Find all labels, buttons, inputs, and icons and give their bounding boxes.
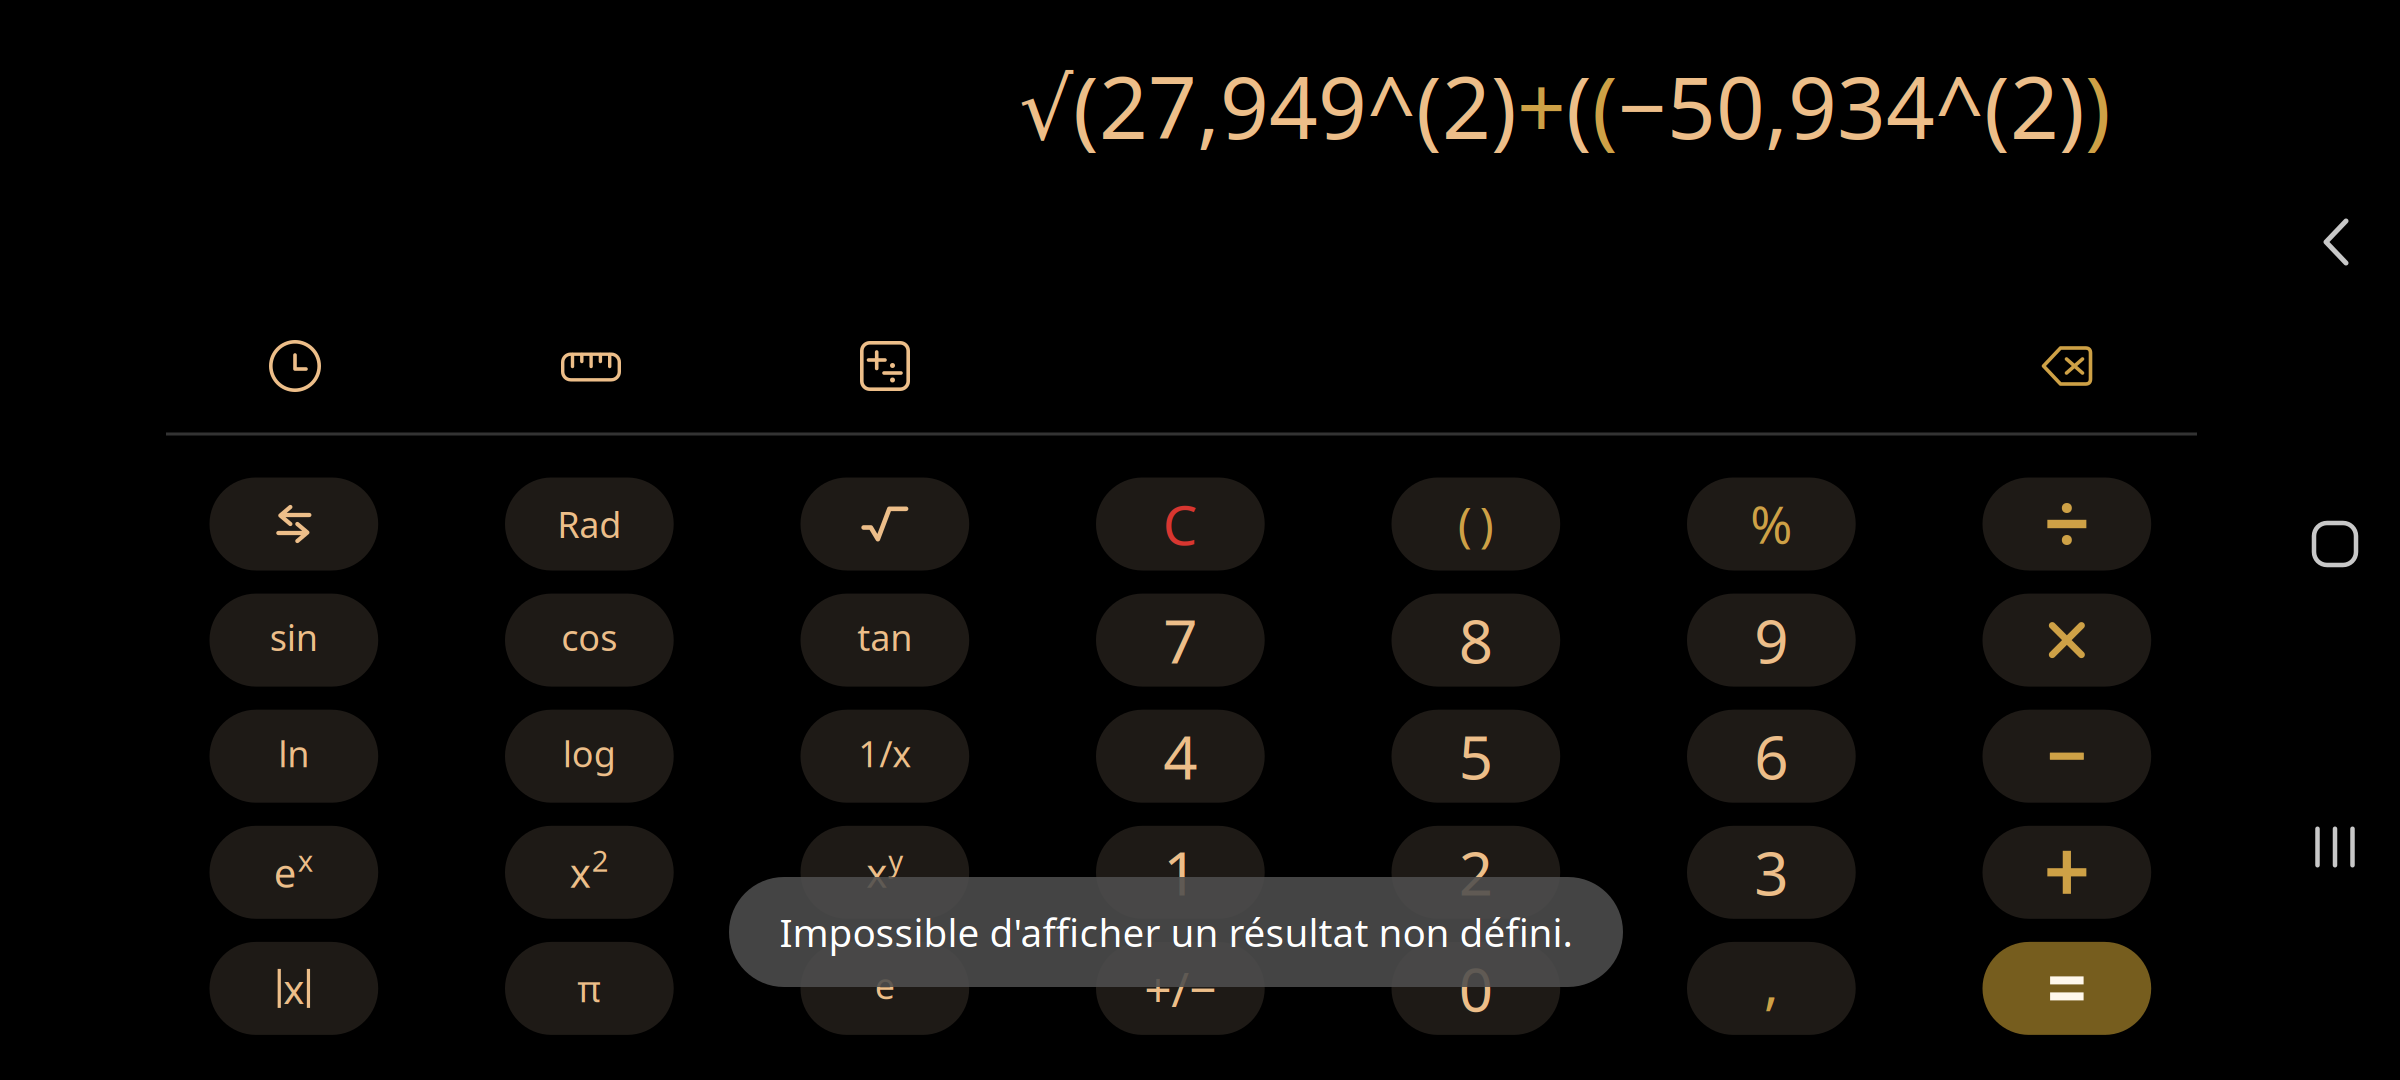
button[interactable]: 8: [1391, 594, 1560, 687]
staticText: 0: [1459, 949, 1493, 1028]
staticText: ,: [1764, 945, 1779, 1020]
button[interactable]: Clear: [1096, 477, 1265, 570]
staticText: C: [1163, 488, 1198, 560]
button[interactable]: e: [800, 942, 969, 1035]
button[interactable]: 6: [1687, 710, 1856, 803]
button[interactable]: x to the power of y: [800, 826, 969, 919]
button[interactable]: Square root: [800, 477, 969, 570]
staticText: 2: [1459, 832, 1493, 912]
staticText: log: [563, 729, 616, 777]
staticText: x: [570, 846, 591, 899]
button[interactable]: History: [269, 340, 321, 392]
button[interactable]: 4: [1096, 710, 1265, 803]
staticText: Impossible d'afficher un résultat non dé…: [779, 906, 1572, 958]
button[interactable]: Plus or minus: [1096, 942, 1265, 1035]
button[interactable]: 3: [1687, 826, 1856, 919]
button[interactable]: π: [505, 942, 674, 1035]
button[interactable]: cos: [505, 594, 674, 687]
button[interactable]: Unit converter: [561, 352, 621, 381]
staticText: 7: [1163, 600, 1197, 680]
staticText: ): [2085, 49, 2111, 163]
button[interactable]: Rad: [505, 477, 674, 570]
staticText: √(27,949^(2): [1019, 49, 1517, 163]
staticText: 3: [1754, 832, 1788, 912]
button[interactable]: 7: [1096, 594, 1265, 687]
button[interactable]: 9: [1687, 594, 1856, 687]
staticText: π: [577, 964, 601, 1012]
button[interactable]: sin: [209, 594, 378, 687]
staticText: 2: [592, 841, 609, 880]
staticText: x: [866, 846, 887, 899]
button[interactable]: Recents: [2314, 826, 2356, 867]
staticText: cos: [561, 613, 617, 661]
button[interactable]: Backspace: [2041, 346, 2092, 386]
button[interactable]: x squared: [505, 826, 674, 919]
button[interactable]: Minus: [1982, 710, 2151, 803]
staticText: +: [1144, 956, 1171, 1020]
button[interactable]: Parentheses: [1391, 477, 1560, 570]
button[interactable]: Equals: [1982, 942, 2151, 1035]
button[interactable]: Calculator: [860, 341, 910, 391]
staticText: x: [298, 841, 314, 880]
staticText: Rad: [557, 500, 621, 548]
staticText: 1/x: [858, 729, 911, 777]
button[interactable]: 5: [1391, 710, 1560, 803]
staticText: /: [1171, 956, 1189, 1020]
staticText: −: [1189, 956, 1216, 1020]
button[interactable]: log: [505, 710, 674, 803]
button[interactable]: Divide: [1982, 477, 2151, 570]
button[interactable]: Reciprocal: [800, 710, 969, 803]
button[interactable]: tan: [800, 594, 969, 687]
button[interactable]: Multiply: [1982, 594, 2151, 687]
button[interactable]: Percent: [1687, 477, 1856, 570]
button[interactable]: ln: [209, 710, 378, 803]
button[interactable]: 1: [1096, 826, 1265, 919]
staticText: y: [888, 841, 903, 880]
staticText: 4: [1163, 716, 1197, 796]
button[interactable]: Home: [2314, 523, 2356, 565]
staticText: e: [875, 961, 895, 1009]
staticText: +: [1517, 49, 1566, 163]
staticText: x: [283, 962, 304, 1015]
staticText: ): [1480, 493, 1494, 555]
staticText: e: [274, 846, 297, 899]
button[interactable]: 2: [1391, 826, 1560, 919]
staticText: tan: [857, 613, 912, 661]
button[interactable]: Back: [2323, 219, 2349, 265]
staticText: 8: [1459, 600, 1493, 680]
staticText: 5: [1459, 716, 1493, 796]
button[interactable]: e to the power of x: [209, 826, 378, 919]
staticText: (: [1458, 493, 1472, 555]
staticText: sin: [270, 613, 318, 661]
staticText: 6: [1754, 716, 1788, 796]
staticText: (: [1566, 49, 1592, 163]
staticText: 1: [1163, 832, 1197, 912]
button[interactable]: Swap: [209, 477, 378, 570]
staticText: −50,934^(2): [1618, 49, 2085, 163]
staticText: (: [1592, 49, 1618, 163]
staticText: %: [1750, 490, 1792, 558]
button[interactable]: Decimal separator: [1687, 942, 1856, 1035]
button[interactable]: Plus: [1982, 826, 2151, 919]
staticText: 9: [1754, 600, 1788, 680]
staticText: ln: [278, 729, 309, 777]
button[interactable]: 0: [1391, 942, 1560, 1035]
button[interactable]: Absolute value: [209, 942, 378, 1035]
